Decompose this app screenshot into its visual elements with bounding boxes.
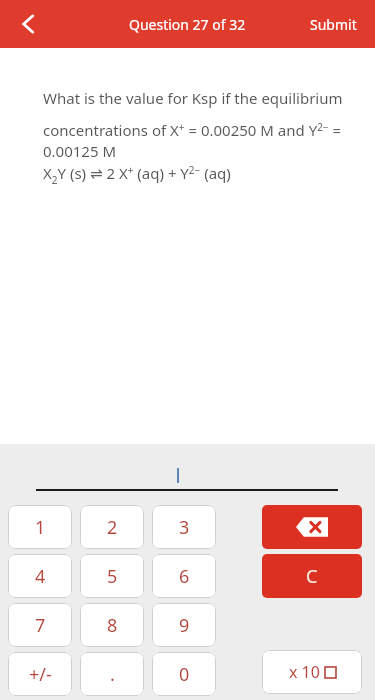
staticText: +/- (29, 662, 52, 687)
button[interactable]: 1 (8, 505, 72, 549)
staticText: C (306, 564, 318, 589)
button[interactable]: Back (8, 4, 48, 44)
staticText: Question 27 of 32 (129, 15, 246, 34)
button[interactable]: 5 (80, 554, 144, 598)
button[interactable]: 8 (80, 603, 144, 647)
button[interactable]: +/- (8, 652, 72, 696)
staticText: X2Y (s) ⇌ 2 X+ (aq) + Y2− (aq) (43, 163, 231, 187)
button[interactable]: C (262, 554, 362, 598)
button[interactable]: . (80, 652, 144, 696)
button[interactable]: 0 (152, 652, 216, 696)
staticText: x 10 (289, 661, 320, 683)
staticText: 6 (179, 564, 190, 589)
staticText: 3 (179, 515, 190, 540)
staticText: 2 (107, 515, 118, 540)
staticText: Submit (310, 15, 357, 34)
staticText: What is the value for Ksp if the equilib… (43, 88, 355, 162)
button[interactable]: x 10 (262, 650, 362, 694)
staticText: 1 (35, 515, 46, 540)
staticText: 7 (35, 613, 46, 638)
button[interactable]: 7 (8, 603, 72, 647)
button[interactable]: Backspace (262, 505, 362, 549)
staticText: 8 (107, 613, 118, 638)
button[interactable] (0, 444, 375, 505)
button[interactable]: 6 (152, 554, 216, 598)
button[interactable]: 4 (8, 554, 72, 598)
staticText: 5 (107, 564, 118, 589)
staticText: 4 (35, 564, 46, 589)
staticText: 9 (179, 613, 190, 638)
staticText: . (110, 662, 115, 687)
button[interactable]: 2 (80, 505, 144, 549)
button[interactable]: 9 (152, 603, 216, 647)
button[interactable]: Submit (304, 9, 363, 40)
staticText: 0 (179, 662, 190, 687)
button[interactable]: 3 (152, 505, 216, 549)
